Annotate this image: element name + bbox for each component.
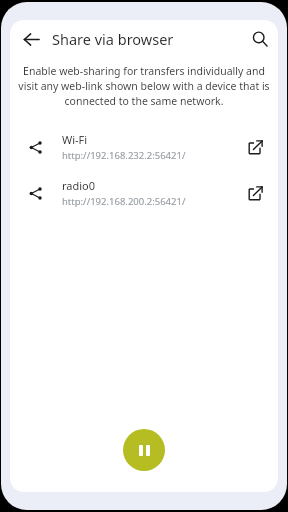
staticText: Enable web-sharing for transfers individ… (18, 64, 270, 108)
staticText: http://192.168.200.2:56421/ (62, 195, 186, 208)
button[interactable]: Wi-Fi (10, 124, 278, 170)
button[interactable]: Search (245, 24, 275, 54)
button[interactable]: Open in browser (240, 178, 270, 208)
staticText: radio0 (62, 178, 96, 193)
staticText: Share via browser (52, 29, 174, 49)
button[interactable]: Pause sharing (123, 429, 165, 471)
button[interactable]: Back (16, 24, 46, 54)
staticText: Wi-Fi (62, 132, 88, 147)
button[interactable]: Open in browser (240, 132, 270, 162)
button[interactable]: radio0 (10, 170, 278, 216)
staticText: http://192.168.232.2:56421/ (62, 149, 186, 162)
